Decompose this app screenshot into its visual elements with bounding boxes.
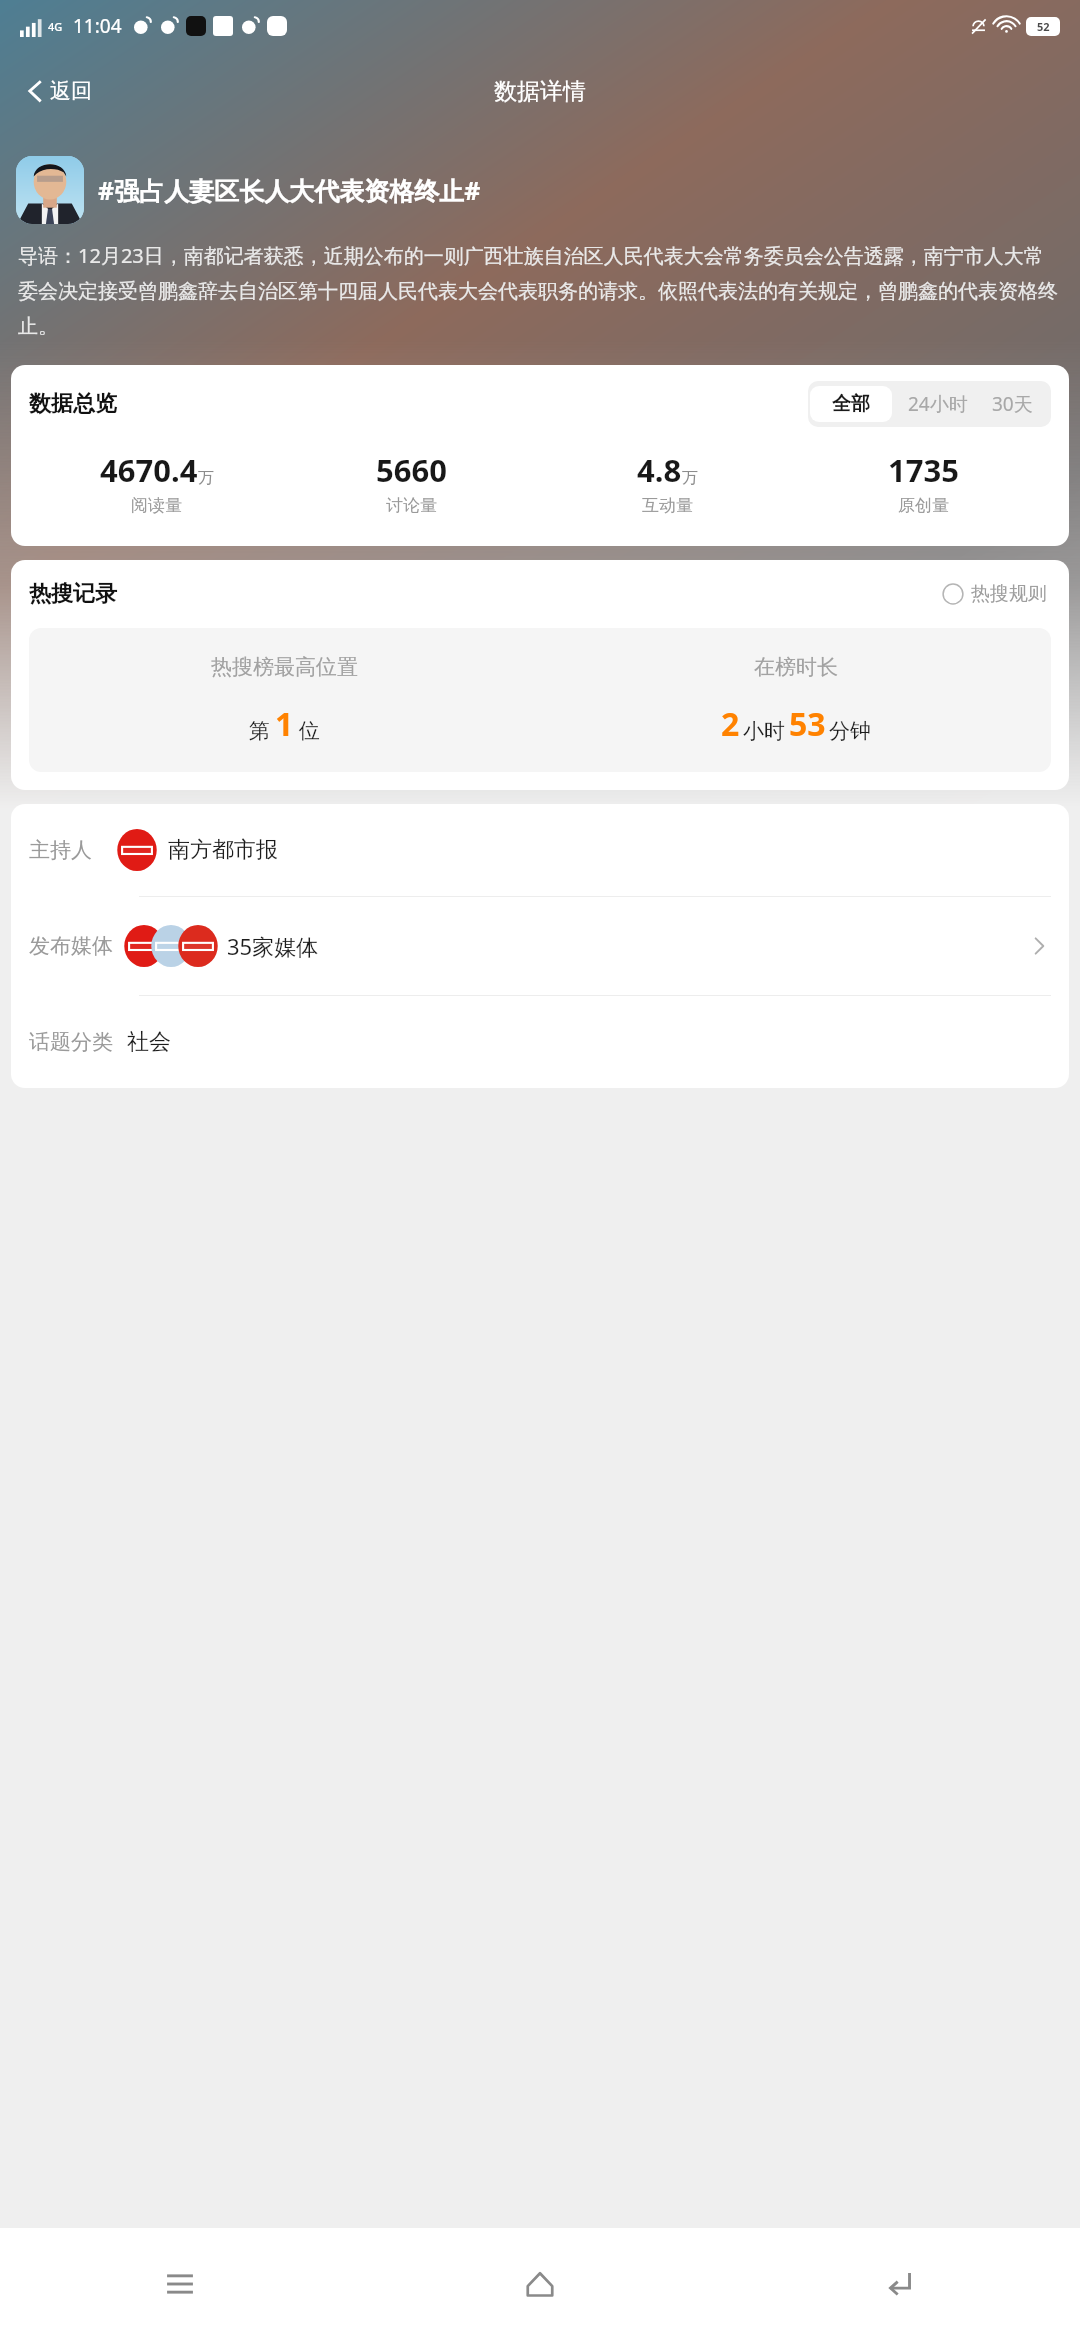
button[interactable]: 发布媒体 [11,897,1069,995]
button[interactable]: 30天 [982,383,1051,425]
staticText: 全部 [832,392,870,416]
staticText: 主持人 [29,837,92,863]
staticText: 返回 [50,78,92,104]
staticText: 位 [299,718,320,744]
button[interactable]: 24小时 [894,383,982,425]
button[interactable]: 话题分类 [11,996,1069,1088]
staticText: 第 [249,718,270,744]
staticText: 热搜记录 [29,580,117,608]
staticText: 5660 [376,449,447,491]
staticText: 阅读量 [131,495,182,516]
staticText: 53 [789,702,826,746]
button[interactable]: 主持人 [11,804,1069,896]
staticText: 4.8 [637,449,682,491]
staticText: 2 [721,702,740,746]
staticText: 4670.4 [100,449,198,491]
button[interactable]: Topic avatar [16,156,84,224]
staticText: 热搜规则 [971,582,1047,606]
staticText: 原创量 [898,495,949,516]
button[interactable]: 热搜规则 [938,578,1051,610]
staticText: 社会 [127,1028,171,1056]
button[interactable]: 返回 [14,72,100,110]
staticText: 万 [198,468,214,488]
button[interactable]: Back [720,2228,1080,2340]
staticText: #强占人妻区长人大代表资格终止# [98,173,481,207]
staticText: 热搜榜最高位置 [211,654,358,680]
staticText: 数据总览 [29,390,117,418]
button[interactable]: 全部 [810,386,892,422]
staticText: 数据详情 [494,77,586,106]
staticText: 24小时 [908,391,968,417]
button[interactable]: Recent apps [0,2228,360,2340]
staticText: 南方都市报 [168,836,278,864]
staticText: 导语：12月23日，南都记者获悉，近期公布的一则广西壮族自治区人民代表大会常务委… [18,242,1062,339]
staticText: 35家媒体 [227,931,319,961]
staticText: 1 [275,702,294,746]
button[interactable]: Home [360,2228,720,2340]
staticText: 分钟 [829,718,871,744]
staticText: 发布媒体 [29,933,113,959]
staticText: 1735 [888,449,959,491]
staticText: 在榜时长 [754,654,838,680]
staticText: 万 [682,468,698,488]
staticText: 小时 [743,718,785,744]
staticText: 话题分类 [29,1029,113,1055]
staticText: 互动量 [642,495,693,516]
staticText: 11:04 [73,13,122,39]
staticText: 4G [48,19,63,34]
staticText: 30天 [992,391,1033,417]
staticText: 讨论量 [386,495,437,516]
staticText: 52 [1037,19,1050,34]
